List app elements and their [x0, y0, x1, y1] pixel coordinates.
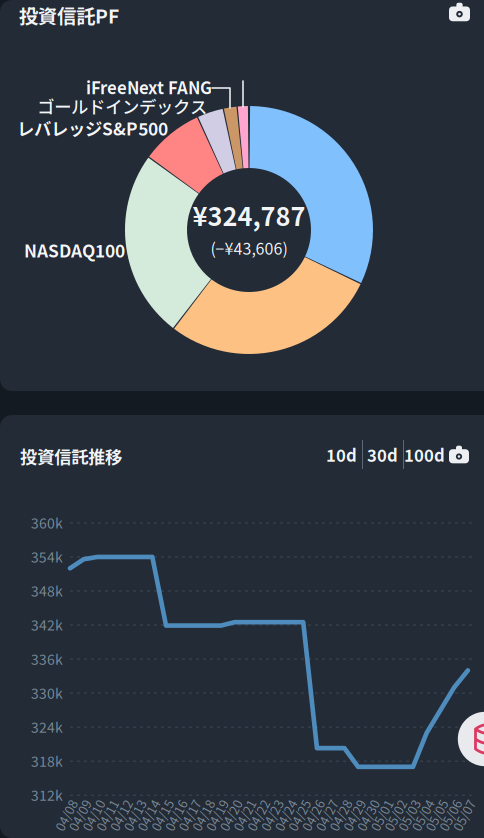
staticText: 04/27	[310, 806, 343, 824]
staticText: (−¥43,606)	[210, 236, 287, 259]
staticText: 318k	[31, 750, 63, 771]
staticText: 04/29	[338, 806, 371, 824]
staticText: 05/01	[365, 806, 398, 824]
staticText: 投資信託推移	[20, 443, 122, 469]
staticText: 04/24	[269, 806, 302, 824]
staticText: 100d	[404, 442, 445, 466]
staticText: ¥324,787	[192, 197, 305, 233]
staticText: 05/04	[406, 806, 439, 824]
staticText: レバレッジS&P500	[17, 115, 168, 141]
button[interactable]: データ	[0, 0, 484, 838]
staticText: 10d	[326, 442, 357, 466]
staticText: 04/18	[187, 806, 220, 824]
staticText: 354k	[31, 546, 63, 567]
button[interactable]: 10d	[321, 440, 362, 469]
staticText: 04/30	[351, 806, 384, 824]
staticText: 342k	[31, 614, 63, 635]
staticText: iFreeNext FANG	[86, 75, 212, 99]
staticText: 04/10	[77, 806, 110, 824]
staticText: 04/12	[104, 806, 137, 824]
staticText: 348k	[31, 580, 63, 601]
staticText: 04/11	[91, 806, 124, 824]
staticText: 05/05	[420, 806, 453, 824]
staticText: 04/14	[132, 806, 165, 824]
staticText: 04/13	[118, 806, 151, 824]
staticText: 05/02	[379, 806, 412, 824]
staticText: 04/09	[63, 806, 96, 824]
staticText: 04/28	[324, 806, 357, 824]
button[interactable]: スクリーンショットを保存	[449, 1, 475, 23]
button[interactable]: スクリーンショットを保存	[449, 440, 475, 469]
staticText: 04/25	[283, 806, 316, 824]
staticText: 04/08	[49, 806, 82, 824]
staticText: 04/21	[228, 806, 261, 824]
staticText: 05/03	[392, 806, 425, 824]
staticText: NASDAQ100	[24, 237, 125, 263]
staticText: 30d	[367, 442, 398, 466]
staticText: 04/23	[255, 806, 288, 824]
button[interactable]: 100d	[403, 440, 446, 469]
staticText: 05/07	[447, 806, 480, 824]
staticText: 324k	[31, 716, 63, 737]
staticText: 04/22	[242, 806, 275, 824]
staticText: 330k	[31, 682, 63, 703]
staticText: 04/15	[145, 806, 178, 824]
staticText: 04/20	[214, 806, 247, 824]
staticText: 05/06	[434, 806, 467, 824]
staticText: 投資信託PF	[19, 1, 119, 29]
staticText: 04/16	[159, 806, 192, 824]
staticText: 04/17	[173, 806, 206, 824]
staticText: 04/19	[200, 806, 233, 824]
staticText: 360k	[31, 512, 63, 533]
button[interactable]: 30d	[362, 440, 403, 469]
staticText: 04/26	[296, 806, 329, 824]
staticText: 336k	[31, 648, 63, 669]
staticText: 312k	[31, 785, 63, 805]
staticText: ゴールドインデックス	[37, 93, 207, 119]
